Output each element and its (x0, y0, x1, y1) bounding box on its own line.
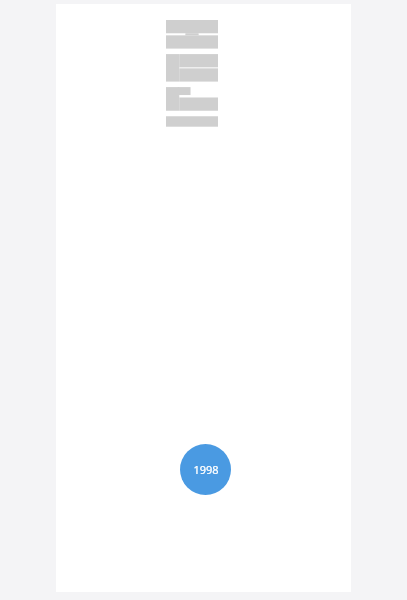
button[interactable]: 1998 (180, 444, 231, 495)
other: HUJI (166, 20, 218, 130)
staticText: 1998 (193, 462, 219, 477)
